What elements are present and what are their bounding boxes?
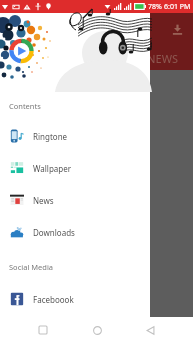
staticText: 6:01 PM (164, 2, 191, 12)
button[interactable]: News (0, 184, 150, 216)
button[interactable]: Faceboook (0, 283, 150, 315)
staticText: Ringtone (33, 131, 68, 142)
button[interactable]: Recents (32, 319, 54, 341)
staticText: Faceboook (33, 294, 74, 305)
staticText: Contents (9, 101, 41, 111)
staticText: NEWS (147, 51, 179, 66)
button[interactable]: Ringtone (0, 120, 150, 152)
button[interactable]: Download (172, 24, 183, 35)
staticText: News (33, 195, 54, 206)
button[interactable]: Home (86, 319, 108, 341)
button[interactable]: Downloads (0, 216, 150, 248)
staticText: 78% (148, 2, 162, 12)
staticText: Social Media (9, 262, 54, 272)
button[interactable]: Back (139, 319, 161, 341)
button[interactable]: Wallpaper (0, 152, 150, 184)
staticText: Wallpaper (33, 163, 72, 174)
staticText: Downloads (33, 227, 75, 238)
